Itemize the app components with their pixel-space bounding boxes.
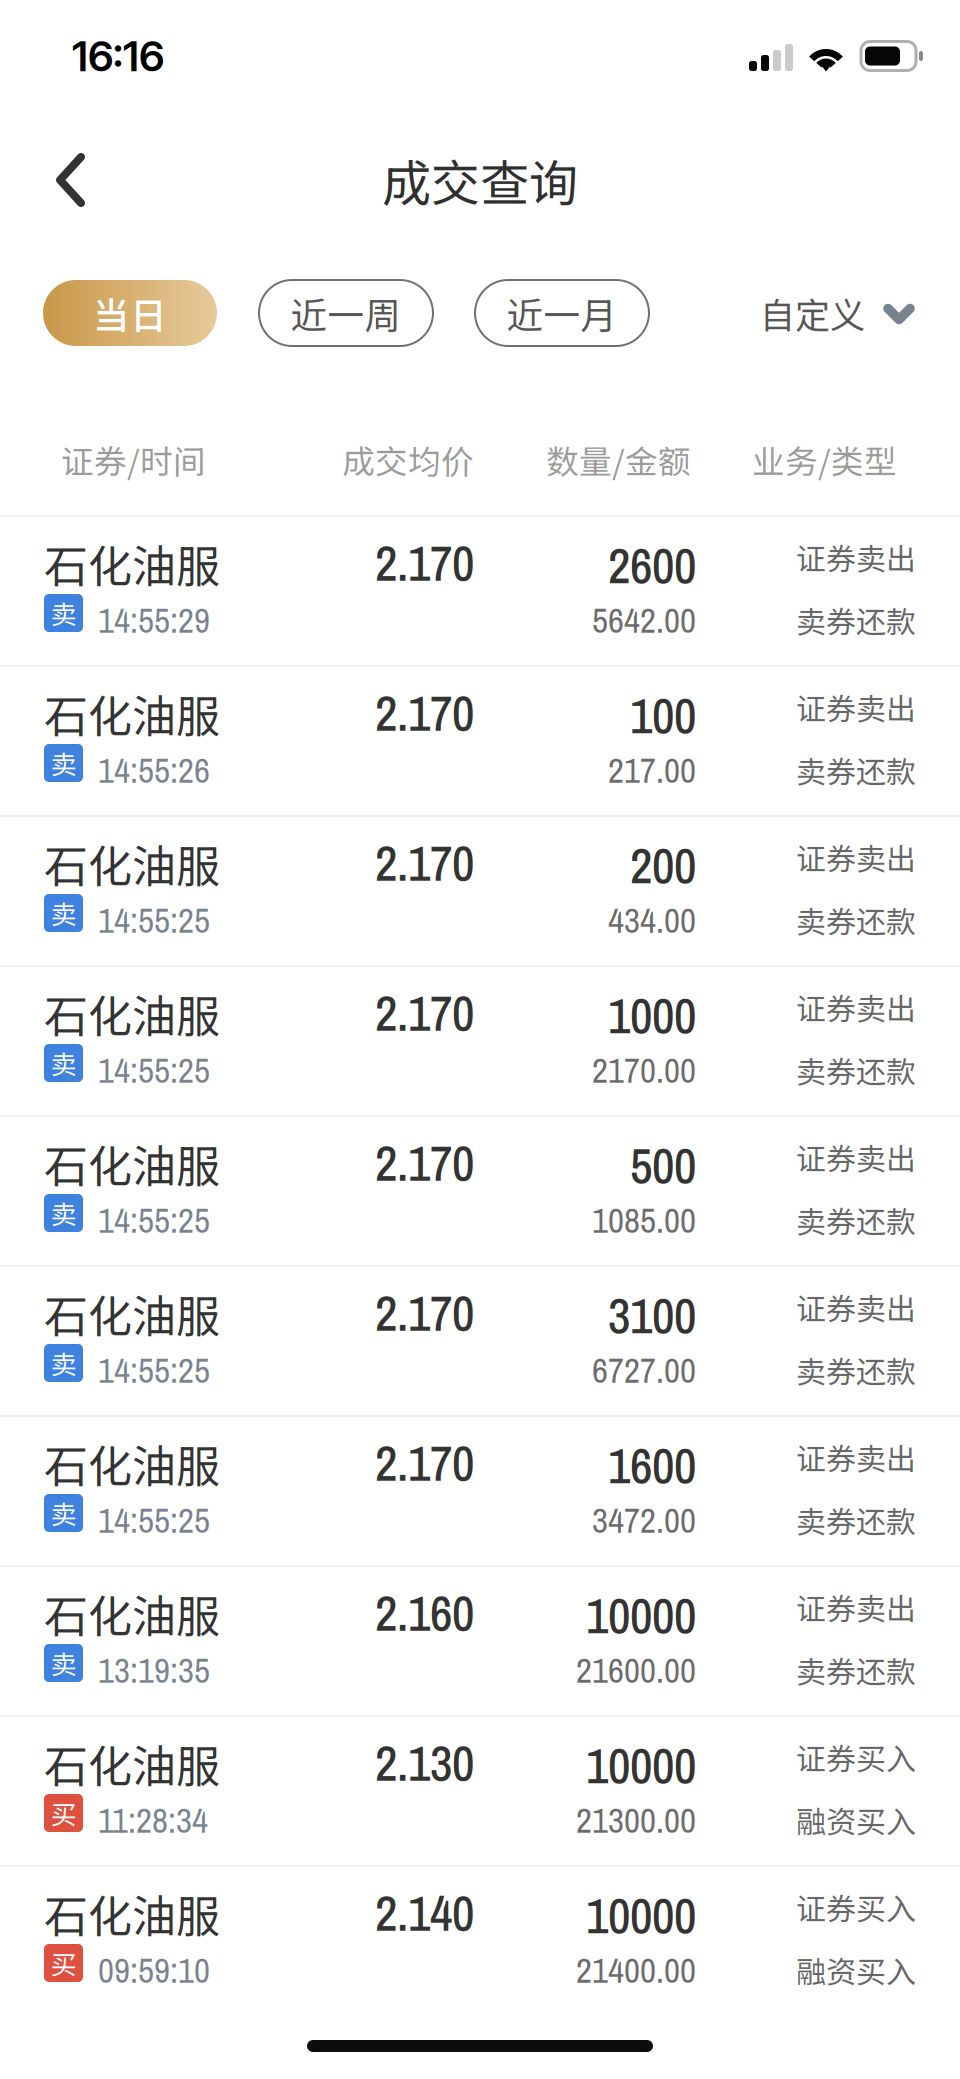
staticText: 10000 bbox=[586, 1882, 696, 1949]
staticText: 1600 bbox=[608, 1432, 696, 1499]
staticText: 卖 bbox=[50, 744, 76, 782]
staticText: 石化油服 bbox=[44, 1581, 220, 1645]
staticText: 1085.00 bbox=[592, 1196, 696, 1243]
button[interactable]: 自定义 bbox=[760, 287, 915, 338]
staticText: 2600 bbox=[608, 532, 696, 599]
staticText: 证券卖出 bbox=[796, 1135, 916, 1179]
staticText: 成交查询 bbox=[382, 144, 578, 215]
staticText: 14:55:26 bbox=[98, 746, 210, 793]
staticText: 卖券还款 bbox=[796, 1498, 916, 1542]
staticText: 证券卖出 bbox=[796, 985, 916, 1029]
staticText: 卖 bbox=[50, 1494, 76, 1532]
staticText: 2.170 bbox=[375, 980, 474, 1046]
staticText: 217.00 bbox=[608, 746, 696, 793]
staticText: 11:28:34 bbox=[98, 1796, 208, 1843]
staticText: 石化油服 bbox=[44, 1431, 220, 1495]
staticText: 石化油服 bbox=[44, 1281, 220, 1345]
button[interactable]: 石化油服 bbox=[0, 1715, 960, 1865]
staticText: 6727.00 bbox=[592, 1346, 696, 1393]
button[interactable]: 近一周 bbox=[259, 280, 433, 346]
staticText: 卖券还款 bbox=[796, 598, 916, 642]
staticText: 14:55:25 bbox=[98, 1346, 210, 1393]
staticText: 当日 bbox=[93, 287, 167, 339]
staticText: 近一月 bbox=[506, 287, 617, 339]
staticText: 卖券还款 bbox=[796, 1648, 916, 1692]
staticText: 卖券还款 bbox=[796, 1198, 916, 1242]
button[interactable]: 石化油服 bbox=[0, 965, 960, 1115]
button[interactable]: 当日 bbox=[43, 280, 217, 346]
staticText: 卖 bbox=[50, 594, 76, 632]
staticText: 卖 bbox=[50, 1194, 76, 1232]
button[interactable]: 石化油服 bbox=[0, 815, 960, 965]
staticText: 14:55:25 bbox=[98, 1496, 210, 1543]
staticText: 2170.00 bbox=[592, 1046, 696, 1093]
staticText: 14:55:25 bbox=[98, 1046, 210, 1093]
staticText: 21300.00 bbox=[576, 1796, 696, 1843]
staticText: 证券买入 bbox=[796, 1885, 916, 1929]
staticText: 自定义 bbox=[760, 287, 865, 338]
button[interactable]: 石化油服 bbox=[0, 1865, 960, 2015]
staticText: 10000 bbox=[586, 1732, 696, 1799]
staticText: 2.160 bbox=[375, 1580, 474, 1646]
staticText: 2.170 bbox=[375, 1130, 474, 1196]
button[interactable]: 石化油服 bbox=[0, 1415, 960, 1565]
staticText: 卖 bbox=[50, 1044, 76, 1082]
staticText: 10000 bbox=[586, 1582, 696, 1649]
staticText: 200 bbox=[630, 832, 696, 899]
staticText: 卖 bbox=[50, 1344, 76, 1382]
staticText: 石化油服 bbox=[44, 681, 220, 745]
button[interactable]: 石化油服 bbox=[0, 1265, 960, 1415]
staticText: 14:55:29 bbox=[98, 596, 210, 643]
staticText: 2.170 bbox=[375, 1280, 474, 1346]
staticText: 买 bbox=[50, 1944, 76, 1982]
staticText: 09:59:10 bbox=[98, 1946, 210, 1993]
button[interactable]: 返回 bbox=[0, 138, 112, 222]
staticText: 卖 bbox=[50, 894, 76, 932]
staticText: 100 bbox=[630, 682, 696, 749]
staticText: 5642.00 bbox=[592, 596, 696, 643]
staticText: 证券买入 bbox=[796, 1735, 916, 1779]
staticText: 石化油服 bbox=[44, 831, 220, 895]
staticText: 证券卖出 bbox=[796, 835, 916, 879]
staticText: 2.170 bbox=[375, 530, 474, 596]
staticText: 14:55:25 bbox=[98, 896, 210, 943]
staticText: 证券/时间 bbox=[61, 436, 206, 483]
staticText: 近一周 bbox=[290, 287, 401, 339]
staticText: 500 bbox=[630, 1132, 696, 1199]
staticText: 融资买入 bbox=[796, 1798, 916, 1842]
staticText: 卖券还款 bbox=[796, 898, 916, 942]
button[interactable]: 石化油服 bbox=[0, 515, 960, 665]
staticText: 434.00 bbox=[608, 896, 696, 943]
staticText: 融资买入 bbox=[796, 1948, 916, 1992]
button[interactable]: 石化油服 bbox=[0, 1115, 960, 1265]
staticText: 2.140 bbox=[375, 1880, 474, 1946]
staticText: 3472.00 bbox=[592, 1496, 696, 1543]
staticText: 石化油服 bbox=[44, 1131, 220, 1195]
staticText: 证券卖出 bbox=[796, 1435, 916, 1479]
staticText: 石化油服 bbox=[44, 1881, 220, 1945]
staticText: 业务/类型 bbox=[752, 436, 897, 483]
staticText: 证券卖出 bbox=[796, 1585, 916, 1629]
staticText: 2.130 bbox=[375, 1730, 474, 1796]
staticText: 石化油服 bbox=[44, 1731, 220, 1795]
staticText: 买 bbox=[50, 1794, 76, 1832]
staticText: 证券卖出 bbox=[796, 1285, 916, 1329]
staticText: 1000 bbox=[608, 982, 696, 1049]
staticText: 证券卖出 bbox=[796, 685, 916, 729]
button[interactable]: 石化油服 bbox=[0, 1565, 960, 1715]
staticText: 石化油服 bbox=[44, 981, 220, 1045]
staticText: 2.170 bbox=[375, 830, 474, 896]
staticText: 3100 bbox=[608, 1282, 696, 1349]
button[interactable]: 石化油服 bbox=[0, 665, 960, 815]
staticText: 2.170 bbox=[375, 1430, 474, 1496]
staticText: 卖券还款 bbox=[796, 748, 916, 792]
staticText: 13:19:35 bbox=[98, 1646, 210, 1693]
staticText: 21600.00 bbox=[576, 1646, 696, 1693]
button[interactable]: 近一月 bbox=[475, 280, 649, 346]
staticText: 成交均价 bbox=[342, 436, 474, 483]
staticText: 石化油服 bbox=[44, 531, 220, 595]
staticText: 卖券还款 bbox=[796, 1348, 916, 1392]
staticText: 2.170 bbox=[375, 680, 474, 746]
staticText: 卖 bbox=[50, 1644, 76, 1682]
staticText: 21400.00 bbox=[576, 1946, 696, 1993]
